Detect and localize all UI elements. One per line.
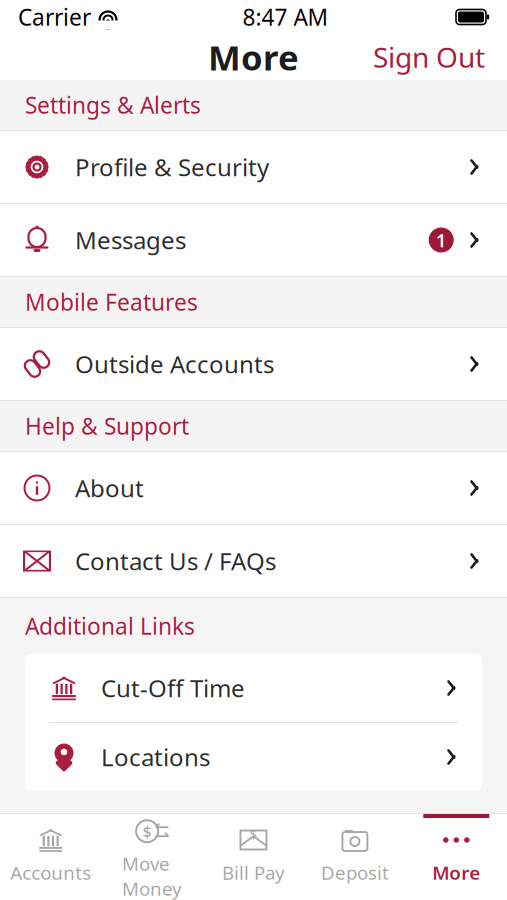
staticText: Cut-Off Time: [101, 672, 245, 704]
staticText: More: [208, 34, 299, 80]
staticText: More: [432, 860, 480, 885]
button[interactable]: Accounts: [0, 814, 101, 900]
staticText: Accounts: [10, 860, 91, 885]
button[interactable]: Cut-Off Time: [25, 654, 482, 722]
staticText: Sign Out: [373, 38, 485, 76]
staticText: $: [249, 825, 257, 843]
button[interactable]: Messages: [0, 204, 507, 276]
staticText: Mobile Features: [25, 287, 198, 317]
staticText: Contact Us / FAQs: [75, 545, 276, 577]
button[interactable]: About: [0, 452, 507, 524]
staticText: Deposit: [321, 860, 389, 885]
button[interactable]: $: [101, 814, 203, 900]
button[interactable]: Contact Us / FAQs: [0, 525, 507, 597]
button[interactable]: More: [406, 814, 507, 900]
staticText: Bill Pay: [222, 860, 285, 885]
staticText: Profile & Security: [75, 151, 269, 183]
staticText: Move Money: [122, 851, 182, 900]
staticText: Carrier: [18, 2, 91, 32]
button[interactable]: Deposit: [304, 814, 406, 900]
staticText: Messages: [75, 224, 186, 256]
button[interactable]: Outside Accounts: [0, 328, 507, 400]
staticText: $: [143, 821, 152, 842]
staticText: Outside Accounts: [75, 348, 274, 380]
staticText: Additional Links: [25, 611, 195, 641]
staticText: Locations: [101, 741, 210, 773]
staticText: Settings & Alerts: [25, 90, 201, 120]
button[interactable]: Sign Out: [373, 30, 507, 84]
button[interactable]: $: [203, 814, 304, 900]
staticText: Help & Support: [25, 411, 189, 441]
staticText: About: [75, 472, 144, 504]
button[interactable]: Profile & Security: [0, 131, 507, 203]
button[interactable]: Locations: [25, 723, 482, 791]
staticText: 8:47 AM: [242, 2, 328, 32]
staticText: 1: [436, 228, 447, 252]
